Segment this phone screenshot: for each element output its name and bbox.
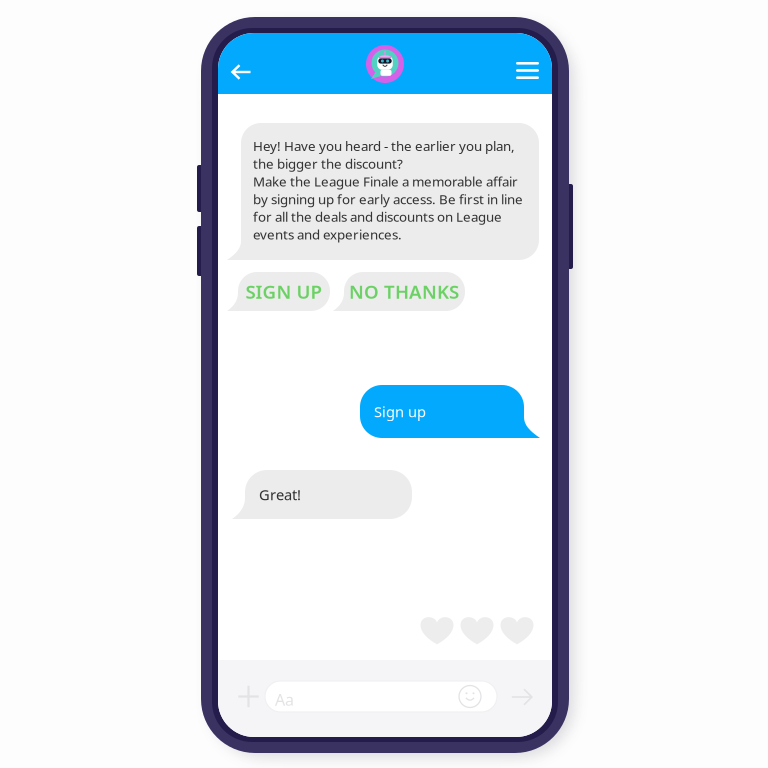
- staticText: Hey! Have you heard - the earlier you pl…: [253, 137, 523, 243]
- button[interactable]: Add attachment: [229, 677, 267, 716]
- button[interactable]: SIGN UP: [227, 272, 330, 311]
- staticText: SIGN UP: [245, 279, 321, 304]
- staticText: Aa: [275, 689, 294, 710]
- button[interactable]: Emoji: [457, 683, 483, 709]
- button[interactable]: Send: [503, 680, 540, 714]
- staticText: Sign up: [374, 402, 426, 421]
- staticText: NO THANKS: [349, 279, 459, 304]
- button[interactable]: Menu: [506, 53, 549, 88]
- button[interactable]: NO THANKS: [333, 272, 465, 311]
- button[interactable]: Back: [221, 54, 262, 90]
- staticText: Great!: [259, 485, 301, 504]
